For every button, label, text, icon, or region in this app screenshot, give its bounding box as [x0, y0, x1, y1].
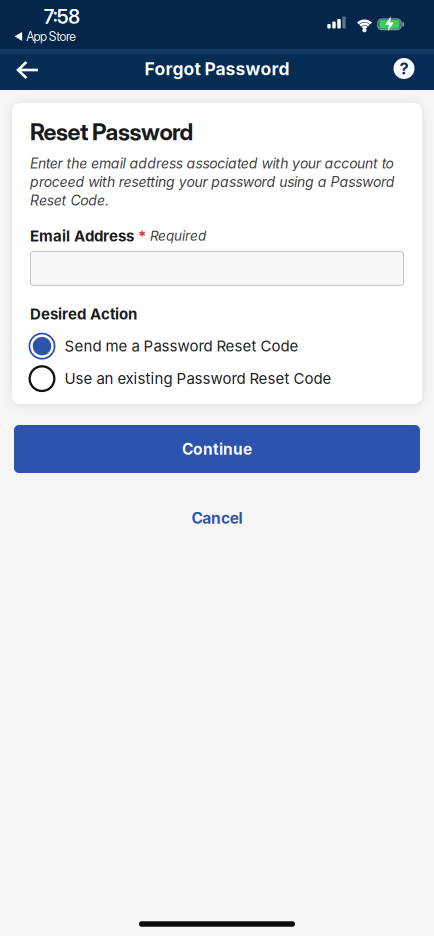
button[interactable]: Email Address	[30, 251, 404, 286]
staticText: Enter the email address associated with …	[30, 155, 395, 209]
staticText: Continue	[182, 440, 252, 458]
staticText: Reset Password	[30, 118, 193, 146]
button[interactable]: Help	[393, 58, 414, 79]
staticText: Cancel	[191, 509, 242, 527]
button[interactable]: Cancel	[183, 501, 250, 535]
button[interactable]: Continue	[14, 425, 420, 473]
staticText: Required	[150, 228, 206, 244]
staticText: ?	[399, 58, 408, 78]
staticText: App Store	[26, 29, 76, 44]
staticText: Email Address	[30, 227, 134, 245]
button[interactable]: Back	[8, 52, 48, 88]
button[interactable]: Use an existing Password Reset Code	[28, 365, 331, 392]
button[interactable]: Send me a Password Reset Code	[28, 333, 298, 360]
staticText: 7:58	[44, 5, 80, 28]
staticText: Use an existing Password Reset Code	[64, 370, 331, 388]
staticText: Desired Action	[30, 305, 137, 323]
staticText: Send me a Password Reset Code	[64, 337, 298, 355]
button[interactable]: Back to App Store	[15, 29, 76, 44]
staticText: *	[138, 227, 146, 245]
staticText: Forgot Password	[144, 58, 289, 80]
